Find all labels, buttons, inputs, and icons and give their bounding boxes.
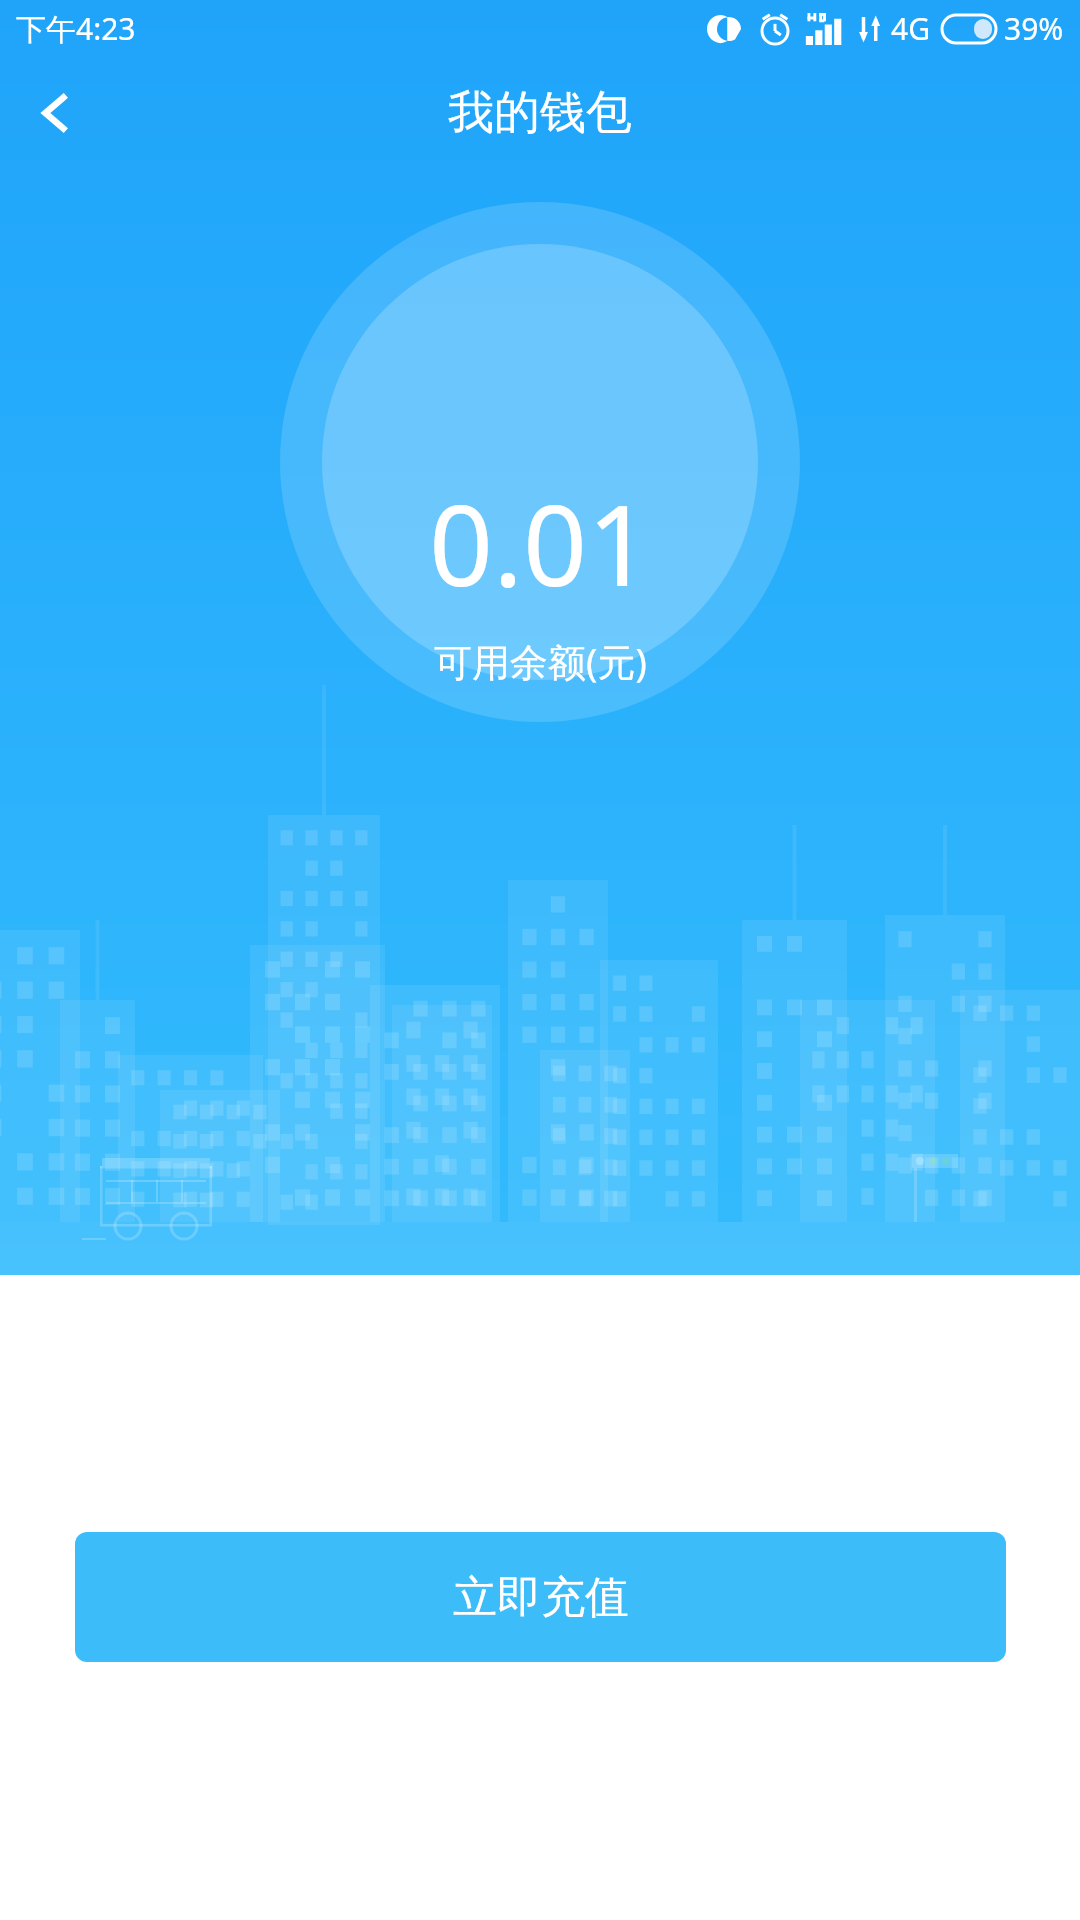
staticText: 立即充值 [453,1570,629,1625]
button[interactable]: 立即充值 [75,1532,1006,1662]
staticText: 我的钱包 [448,84,632,142]
button[interactable]: Back [0,56,110,170]
staticText: 0.01 [429,466,652,619]
staticText: 4G [891,8,930,49]
staticText: 下午4:23 [16,8,136,49]
staticText: 可用余额(元) [434,635,647,687]
staticText: 39% [1004,8,1064,49]
